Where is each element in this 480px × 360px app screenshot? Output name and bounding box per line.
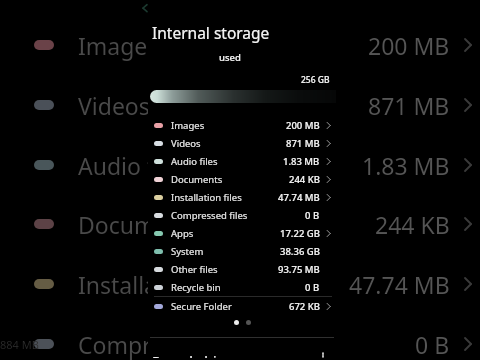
staticText: 200 MB [368, 30, 450, 61]
button[interactable]: Apps [148, 224, 336, 242]
button[interactable]: Secure Folder [148, 297, 336, 315]
button[interactable]: System [148, 242, 336, 260]
staticText: Images [78, 30, 159, 61]
staticText: 47.74 MB [278, 191, 320, 204]
staticText: Images [171, 119, 205, 132]
staticText: Internal storage [152, 22, 270, 43]
staticText: 244 KB [375, 209, 450, 240]
staticText: Recycle bin [171, 281, 221, 294]
staticText: 871 MB [286, 137, 320, 150]
staticText: Recycle bin [152, 352, 226, 358]
staticText: Documents [78, 209, 202, 240]
staticText: 244 KB [289, 173, 320, 186]
staticText: used [219, 51, 241, 64]
staticText: Audio files [171, 155, 218, 168]
staticText: 256 GB [301, 74, 330, 86]
staticText: 17.22 GB [280, 227, 320, 240]
button[interactable]: Documents [148, 170, 336, 188]
staticText: Installation files [171, 191, 242, 204]
staticText: Secure Folder [171, 300, 232, 313]
button[interactable]: Videos [148, 134, 336, 152]
staticText: 93.75 MB [278, 263, 320, 276]
staticText: 884 MB [0, 337, 39, 352]
staticText: Videos [171, 137, 201, 150]
staticText: 1.83 MB [283, 155, 320, 168]
button[interactable]: More options [314, 352, 332, 358]
staticText: Other files [171, 263, 218, 276]
staticText: Compressed files [171, 209, 248, 222]
staticText: 0 B [305, 281, 320, 294]
button[interactable]: Images [148, 116, 336, 134]
button[interactable]: Recycle bin [148, 278, 336, 296]
staticText: Apps [171, 227, 194, 240]
staticText: 0 B [415, 329, 450, 360]
button[interactable]: Recycle bin [148, 350, 336, 360]
staticText: Audio files [78, 150, 191, 181]
staticText: Documents [171, 173, 223, 186]
button[interactable]: Other files [148, 260, 336, 278]
staticText: 672 KB [289, 300, 320, 313]
staticText: 1.83 MB [362, 150, 450, 181]
button[interactable]: Compressed files [148, 206, 336, 224]
button[interactable]: Installation files [148, 188, 336, 206]
staticText: 200 MB [286, 119, 320, 132]
staticText: 871 MB [368, 90, 450, 121]
button[interactable]: Audio files [148, 152, 336, 170]
staticText: Compressed files [78, 329, 264, 360]
staticText: 47.74 MB [349, 269, 450, 300]
staticText: Videos [78, 90, 150, 121]
staticText: 0 B [305, 209, 320, 222]
staticText: Installation files [78, 269, 250, 300]
staticText: System [171, 245, 204, 258]
staticText: 38.36 GB [280, 245, 320, 258]
